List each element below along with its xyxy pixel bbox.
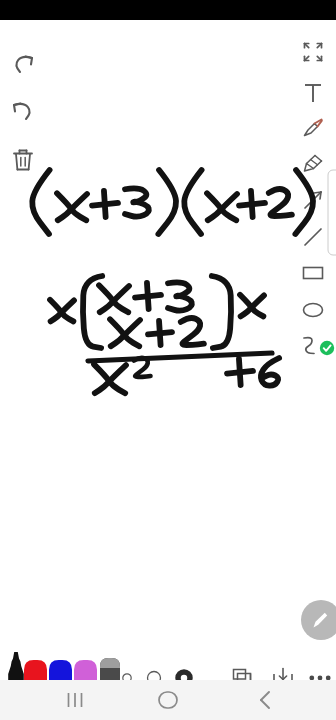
button[interactable]: Text [294, 74, 332, 112]
button[interactable]: Small stroke [112, 663, 142, 693]
button[interactable]: Draw [301, 600, 336, 640]
button[interactable]: Eraser [99, 650, 122, 700]
button[interactable]: Red pen [24, 650, 49, 700]
button[interactable]: Undo [4, 46, 42, 84]
button[interactable]: Blue pen [49, 650, 74, 700]
button[interactable]: Pen [294, 109, 332, 145]
button[interactable]: Back [245, 688, 287, 720]
button[interactable]: Magenta pen [74, 650, 99, 700]
button[interactable]: Save [265, 659, 301, 695]
button[interactable]: Delete [4, 141, 42, 179]
button[interactable]: Home [148, 688, 190, 720]
button[interactable]: Copy [224, 659, 260, 695]
button[interactable]: Recents [55, 688, 97, 720]
button[interactable]: Ellipse [294, 292, 332, 328]
button[interactable]: Rectangle [294, 255, 332, 291]
button[interactable]: Black pen [6, 650, 28, 700]
button[interactable]: Redo [4, 93, 42, 131]
button[interactable]: Line [294, 219, 332, 255]
button[interactable]: Medium stroke [139, 663, 169, 693]
button[interactable]: Fullscreen [294, 33, 332, 71]
button[interactable]: Freehand [294, 328, 334, 366]
button[interactable]: Large stroke [169, 661, 201, 693]
button[interactable]: Arrow [294, 182, 332, 218]
button[interactable]: More options [302, 660, 336, 694]
button[interactable]: Highlighter [294, 145, 332, 181]
